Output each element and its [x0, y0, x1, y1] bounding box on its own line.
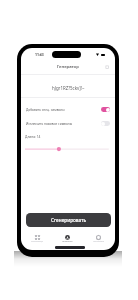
staticText: Длина: 14	[25, 135, 41, 139]
staticText: hJgr1RZ?5ckv]!~	[52, 85, 85, 91]
button[interactable]: Исключить похожие символы	[21, 117, 115, 130]
button[interactable]: Сгенерировать	[26, 213, 111, 227]
staticText: Исключить похожие символы	[26, 122, 101, 126]
button[interactable]: Генератор	[54, 233, 80, 245]
button[interactable]: Copy password	[103, 63, 111, 71]
staticText: Настройки	[93, 240, 104, 243]
staticText: Сгенерировать	[51, 217, 86, 223]
button[interactable]: Добавить спец. символы	[21, 103, 115, 116]
button[interactable]: Хранилище	[24, 233, 50, 245]
staticText: Генератор	[57, 64, 79, 70]
staticText: 11:43	[35, 52, 44, 57]
staticText: Генератор	[62, 240, 73, 243]
staticText: Хранилище	[31, 240, 43, 243]
button[interactable]: Настройки	[85, 233, 111, 245]
staticText: Добавить спец. символы	[26, 108, 101, 112]
